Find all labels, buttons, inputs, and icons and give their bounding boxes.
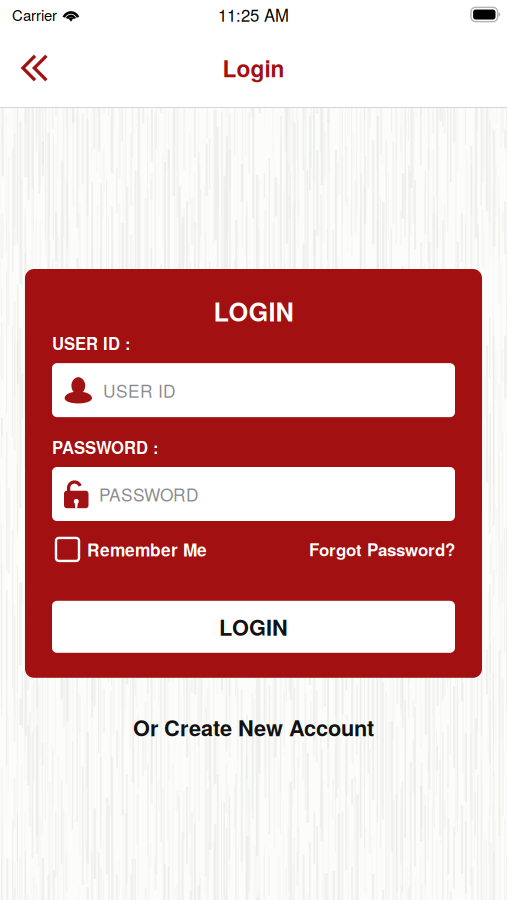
staticText: Remember Me: [87, 537, 207, 562]
button[interactable]: Back: [0, 42, 66, 94]
staticText: Forgot Password?: [309, 537, 455, 561]
button[interactable]: Or Create New Account: [117, 702, 390, 753]
staticText: PASSWORD: [99, 482, 199, 506]
button[interactable]: Forgot Password?: [309, 537, 455, 561]
staticText: Carrier: [12, 4, 57, 25]
staticText: PASSWORD :: [52, 435, 159, 459]
button[interactable]: LOGIN: [52, 601, 455, 653]
staticText: LOGIN: [213, 293, 293, 329]
button[interactable]: Remember Me: [52, 537, 207, 562]
staticText: LOGIN: [219, 611, 288, 642]
staticText: Or Create New Account: [133, 712, 374, 743]
staticText: USER ID :: [52, 331, 131, 355]
staticText: USER ID: [103, 378, 176, 402]
staticText: 11:25 AM: [218, 3, 289, 26]
staticText: Login: [222, 52, 284, 84]
